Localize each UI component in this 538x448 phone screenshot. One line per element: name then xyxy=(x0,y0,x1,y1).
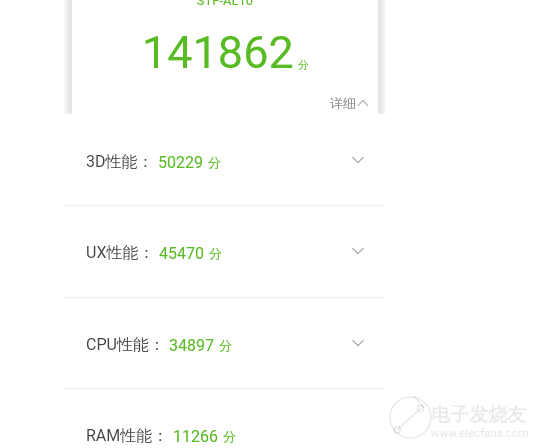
staticText: 141862 xyxy=(142,26,294,79)
staticText: www.elecfans.com xyxy=(431,426,529,439)
staticText: STF-AL10 xyxy=(72,0,378,8)
staticText: 电子发烧友 xyxy=(431,403,526,427)
button[interactable]: UX性能： xyxy=(0,205,538,297)
other: Collapse details xyxy=(355,95,371,111)
button[interactable]: Expand CPU性能： xyxy=(346,331,370,355)
staticText: 3D性能： xyxy=(86,152,154,172)
staticText: CPU性能： xyxy=(86,335,165,355)
staticText: 34897 xyxy=(169,336,214,355)
staticText: 详细 xyxy=(330,95,356,111)
staticText: 分 xyxy=(208,154,221,170)
button[interactable]: RAM性能： xyxy=(0,388,538,448)
staticText: 50229 xyxy=(158,153,203,172)
staticText: UX性能： xyxy=(86,243,155,263)
staticText: RAM性能： xyxy=(86,426,169,446)
button[interactable]: 详细 xyxy=(330,94,372,112)
button[interactable]: Expand UX性能： xyxy=(346,239,370,263)
staticText: 分 xyxy=(223,428,236,444)
staticText: 分 xyxy=(219,337,232,353)
button[interactable]: 3D性能： xyxy=(0,114,538,206)
staticText: 11266 xyxy=(173,427,218,446)
staticText: 45470 xyxy=(159,244,204,263)
staticText: 分 xyxy=(298,58,309,72)
staticText: 分 xyxy=(209,245,222,261)
button[interactable]: CPU性能： xyxy=(0,297,538,389)
button[interactable]: Expand 3D性能： xyxy=(346,148,370,172)
